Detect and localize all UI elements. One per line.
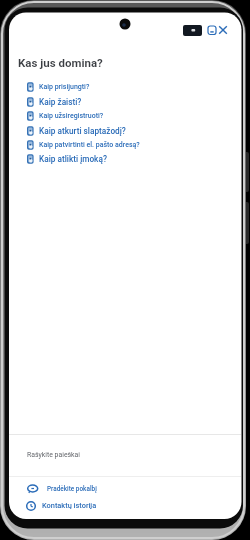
button[interactable]: Kontaktų istorija	[26, 498, 226, 513]
staticText: Kas jus domina?	[18, 56, 103, 69]
button[interactable]: Kaip prisijungti?	[27, 80, 232, 94]
staticText: Kontaktų istorija	[42, 501, 97, 510]
staticText: Rašykite paieškai	[27, 451, 81, 459]
staticText: Kaip užsiregistruoti?	[39, 112, 104, 120]
staticText: Kaip patvirtinti el. pašto adresą?	[39, 141, 140, 149]
staticText: Kaip prisijungti?	[39, 83, 90, 91]
button[interactable]: Kaip patvirtinti el. pašto adresą?	[27, 138, 232, 152]
button[interactable]: Pradėkite pokalbį	[27, 481, 227, 496]
button[interactable]: Kaip atlikti įmoką?	[27, 152, 232, 166]
staticText: Kaip atkurti slaptažodį?	[39, 126, 126, 136]
button[interactable]	[183, 25, 202, 36]
staticText: Kaip žaisti?	[39, 97, 82, 107]
button[interactable]	[217, 24, 229, 36]
button[interactable]: Kaip atkurti slaptažodį?	[27, 124, 232, 138]
button[interactable]	[206, 24, 218, 36]
button[interactable]: Kaip žaisti?	[27, 95, 232, 109]
button[interactable]: Rašykite paieškai	[18, 446, 232, 464]
staticText: Kaip atlikti įmoką?	[39, 154, 107, 164]
staticText: Pradėkite pokalbį	[47, 485, 97, 493]
button[interactable]: Kaip užsiregistruoti?	[27, 109, 232, 123]
